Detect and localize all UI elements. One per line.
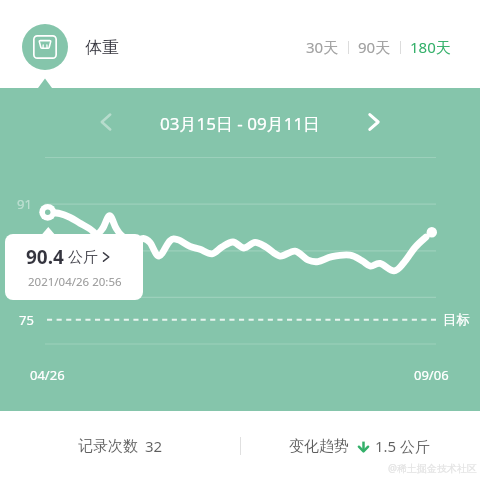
- button[interactable]: 变化趋势: [285, 428, 435, 464]
- staticText: 90天: [358, 37, 391, 57]
- staticText: 180天: [410, 37, 451, 57]
- button[interactable]: 90.4: [5, 234, 143, 300]
- staticText: 变化趋势: [289, 437, 349, 456]
- staticText: 公斤: [68, 248, 98, 267]
- staticText: 75: [19, 311, 34, 329]
- button[interactable]: 90天: [357, 28, 392, 66]
- staticText: 1.5 公斤: [375, 436, 431, 456]
- staticText: 03月15日 - 09月11日: [160, 112, 321, 135]
- staticText: 91: [17, 195, 32, 213]
- staticText: @稀土掘金技术社区: [388, 461, 477, 475]
- button[interactable]: 记录次数: [74, 428, 167, 464]
- button[interactable]: 180天: [409, 28, 452, 66]
- button[interactable]: 体重: [22, 24, 68, 70]
- staticText: 90.4: [26, 244, 64, 270]
- staticText: 04/26: [30, 366, 65, 384]
- staticText: 09/06: [414, 366, 449, 384]
- staticText: 记录次数: [78, 437, 138, 456]
- staticText: 体重: [85, 37, 119, 58]
- staticText: 目标: [443, 311, 470, 328]
- staticText: 30天: [306, 37, 339, 57]
- staticText: 32: [145, 436, 163, 456]
- button[interactable]: 下一页: [360, 108, 388, 136]
- button[interactable]: 上一页: [92, 108, 120, 136]
- staticText: 2021/04/26 20:56: [28, 274, 122, 290]
- button[interactable]: 30天: [305, 28, 340, 66]
